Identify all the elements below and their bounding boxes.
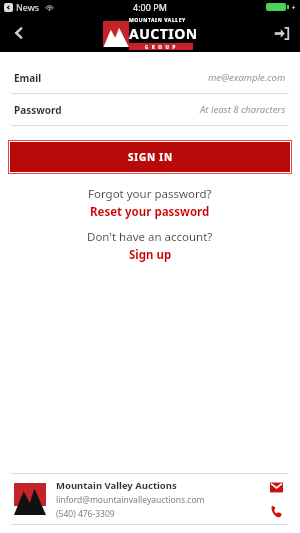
staticText: News xyxy=(16,1,40,13)
staticText: Reset your password xyxy=(90,204,210,220)
button[interactable]: SIGN IN xyxy=(10,142,290,172)
staticText: At least 8 characters xyxy=(200,103,286,116)
button[interactable]: Back xyxy=(0,14,38,52)
staticText: Forgot your password? xyxy=(88,186,212,202)
staticText: Sign up xyxy=(129,247,172,263)
button[interactable]: Call xyxy=(266,501,286,521)
button[interactable]: Sign up xyxy=(129,247,172,263)
staticText: me@example.com xyxy=(208,71,286,84)
staticText: Password xyxy=(14,103,62,117)
staticText: Email xyxy=(14,71,42,85)
staticText: linford@mountainvalleyauctions.com xyxy=(56,494,205,506)
staticText: SIGN IN xyxy=(128,150,173,164)
staticText: Mountain Valley Auctions xyxy=(56,479,177,492)
button[interactable]: Password xyxy=(0,94,300,126)
staticText: 4:00 PM xyxy=(133,1,167,13)
button[interactable]: Email xyxy=(266,477,286,497)
staticText: G R O U P xyxy=(145,44,177,50)
button[interactable]: Sign in xyxy=(262,14,300,52)
button[interactable]: Reset your password xyxy=(90,204,210,220)
staticText: Don't have an account? xyxy=(87,229,213,245)
button[interactable]: Email xyxy=(0,62,300,94)
staticText: AUCTION xyxy=(129,24,198,43)
staticText: (540) 476-3309 xyxy=(56,508,115,520)
staticText: MOUNTAIN VALLEY xyxy=(129,17,186,24)
